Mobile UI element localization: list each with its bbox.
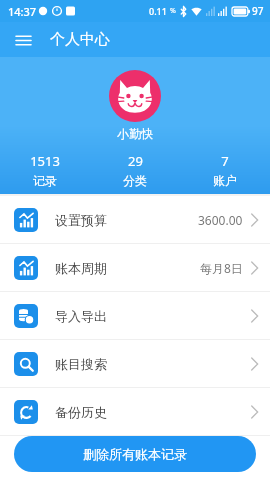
button[interactable]: 备份历史 (0, 388, 270, 435)
staticText: 个人中心 (50, 30, 110, 49)
staticText: 小勤快 (117, 126, 153, 141)
staticText: 删除所有账本记录 (83, 446, 187, 462)
staticText: 14:37 (8, 4, 37, 19)
button[interactable]: 导入导出 (0, 292, 270, 339)
staticText: 账户 (213, 173, 237, 188)
button[interactable]: 账本周期 (0, 244, 270, 291)
button[interactable]: Menu (6, 23, 40, 57)
staticText: 记录 (33, 173, 57, 188)
staticText: 备份历史 (55, 404, 107, 420)
staticText: 29 (128, 152, 143, 170)
staticText: 0.11 (149, 5, 170, 17)
staticText: 设置预算 (55, 212, 107, 228)
staticText: 3600.00 (198, 212, 243, 228)
staticText: 账本周期 (55, 260, 107, 276)
staticText: 分类 (123, 173, 147, 188)
staticText: 1513 (30, 152, 60, 170)
staticText: 97 (252, 4, 264, 18)
button[interactable]: 29 (90, 152, 180, 188)
staticText: 7 (221, 152, 229, 170)
button[interactable]: 7 (180, 152, 270, 188)
button[interactable]: 设置预算 (0, 196, 270, 243)
staticText: 每月8日 (200, 260, 243, 276)
button[interactable]: 删除所有账本记录 (14, 436, 256, 472)
button[interactable]: 账目搜索 (0, 340, 270, 387)
staticText: % (170, 6, 176, 16)
staticText: 导入导出 (55, 308, 107, 324)
staticText: 账目搜索 (55, 356, 107, 372)
button[interactable]: Avatar (109, 70, 161, 122)
button[interactable]: 1513 (0, 152, 90, 188)
